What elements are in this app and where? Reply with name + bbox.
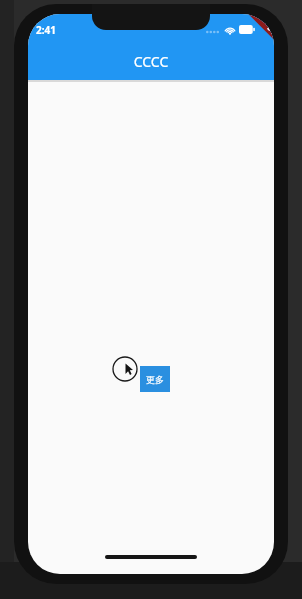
staticText: DEBUG (265, 22, 274, 49)
staticText: 更多 (146, 374, 164, 385)
staticText: CCCC (28, 52, 274, 72)
other: Pointer (112, 356, 138, 382)
button[interactable]: 更多 (140, 366, 170, 392)
other: Wi-Fi (224, 24, 236, 35)
other: Battery (239, 25, 255, 34)
staticText: 2:41 (36, 23, 56, 37)
